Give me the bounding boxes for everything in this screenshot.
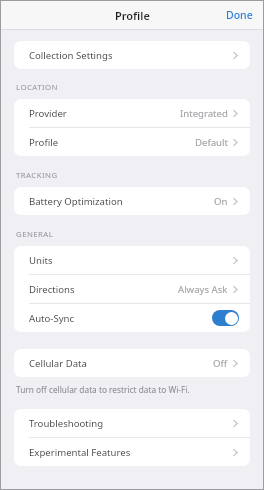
staticText: Profile — [29, 136, 59, 149]
staticText: GENERAL — [16, 229, 54, 240]
staticText: Collection Settings — [29, 49, 113, 62]
button[interactable]: Troubleshooting — [14, 409, 250, 437]
staticText: Experimental Features — [29, 446, 131, 459]
button[interactable]: Battery Optimization — [14, 187, 250, 215]
button[interactable]: Collection Settings — [14, 41, 250, 69]
button[interactable]: Provider — [14, 99, 250, 127]
button[interactable]: Profile — [14, 128, 250, 156]
staticText: Troubleshooting — [29, 417, 104, 430]
staticText: Units — [29, 254, 53, 267]
button[interactable]: Done — [216, 3, 263, 27]
staticText: Done — [226, 8, 253, 22]
staticText: Profile — [115, 8, 150, 23]
staticText: Default — [195, 136, 228, 149]
staticText: Battery Optimization — [29, 195, 123, 208]
button[interactable]: Auto-Sync — [14, 304, 250, 332]
button[interactable]: Experimental Features — [14, 438, 250, 466]
staticText: Off — [213, 357, 228, 370]
staticText: TRACKING — [16, 170, 58, 181]
button[interactable]: Cellular Data — [14, 349, 250, 377]
staticText: Always Ask — [178, 283, 228, 296]
staticText: On — [214, 195, 228, 208]
other: Auto-Sync toggle, on — [212, 310, 239, 326]
button[interactable]: Units — [14, 246, 250, 274]
staticText: Cellular Data — [29, 357, 87, 370]
staticText: Turn off cellular data to restrict data … — [16, 384, 190, 395]
staticText: Provider — [29, 107, 67, 120]
staticText: LOCATION — [16, 82, 58, 93]
staticText: Auto-Sync — [29, 312, 75, 325]
staticText: Integrated — [180, 107, 228, 120]
staticText: Directions — [29, 283, 75, 296]
button[interactable]: Directions — [14, 275, 250, 303]
